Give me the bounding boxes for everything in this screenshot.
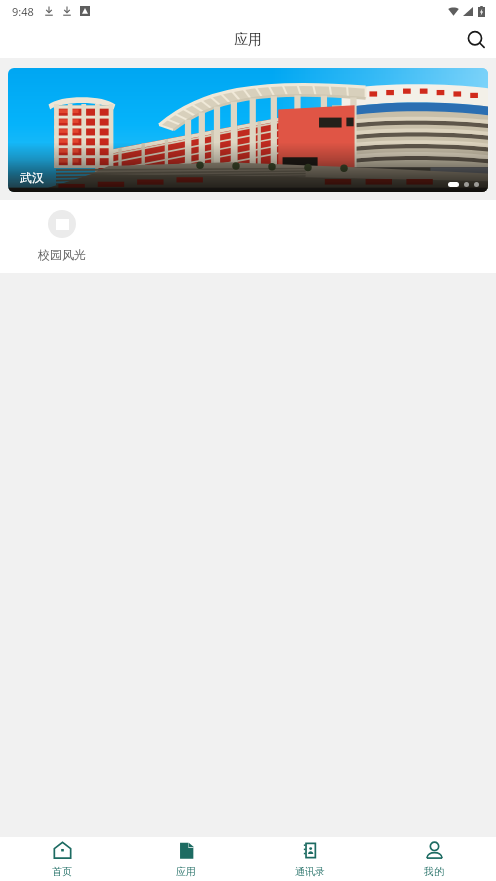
- staticText: 武汉: [20, 170, 44, 185]
- button[interactable]: 通讯录: [248, 837, 372, 881]
- button[interactable]: 我的: [372, 837, 496, 881]
- staticText: 通讯录: [295, 865, 325, 878]
- button[interactable]: 校园风光: [0, 210, 124, 262]
- staticText: 首页: [52, 865, 72, 878]
- staticText: 9:48: [12, 4, 34, 19]
- button[interactable]: Search: [458, 22, 494, 58]
- button[interactable]: 应用: [124, 837, 248, 881]
- button[interactable]: 武汉: [8, 68, 488, 192]
- staticText: 应用: [176, 865, 196, 878]
- button[interactable]: 首页: [0, 837, 124, 881]
- staticText: 校园风光: [38, 247, 86, 262]
- staticText: 应用: [234, 31, 262, 49]
- staticText: 我的: [424, 865, 444, 878]
